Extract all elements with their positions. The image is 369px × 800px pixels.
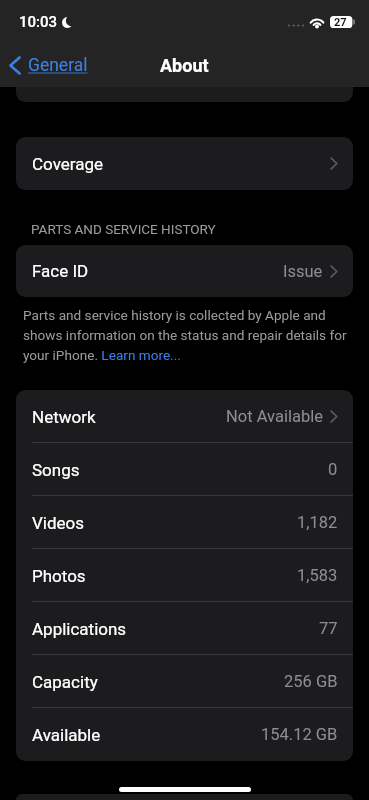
- staticText: 77: [319, 619, 338, 638]
- staticText: Available: [32, 725, 101, 745]
- button[interactable]: Applications: [16, 602, 353, 655]
- staticText: Issue: [283, 262, 323, 281]
- button[interactable]: Capacity: [16, 655, 353, 708]
- button[interactable]: Coverage: [16, 137, 353, 190]
- button[interactable]: Face ID: [16, 245, 353, 297]
- staticText: Photos: [32, 566, 86, 586]
- button[interactable]: General: [0, 50, 98, 81]
- staticText: Not Available: [226, 407, 323, 426]
- button[interactable]: Songs: [16, 443, 353, 496]
- staticText: PARTS AND SERVICE HISTORY: [31, 221, 216, 237]
- button[interactable]: Available: [16, 708, 353, 761]
- button[interactable]: Photos: [16, 549, 353, 602]
- staticText: 10:03: [19, 13, 58, 31]
- staticText: About: [160, 55, 209, 76]
- staticText: Network: [32, 407, 96, 427]
- staticText: Songs: [32, 460, 80, 480]
- button[interactable]: Network: [16, 390, 353, 443]
- staticText: Videos: [32, 513, 85, 533]
- staticText: 27: [334, 16, 347, 28]
- staticText: Coverage: [32, 154, 104, 174]
- staticText: 256 GB: [284, 672, 338, 691]
- staticText: 154.12 GB: [261, 725, 338, 744]
- staticText: Capacity: [32, 672, 98, 692]
- staticText: 1,583: [297, 566, 338, 585]
- staticText: General: [28, 55, 88, 76]
- staticText: 1,182: [297, 513, 338, 532]
- staticText: 0: [328, 460, 338, 479]
- button[interactable]: Videos: [16, 496, 353, 549]
- staticText: Parts and service history is collected b…: [23, 307, 355, 363]
- staticText: Face ID: [32, 261, 89, 281]
- staticText: Applications: [32, 619, 127, 639]
